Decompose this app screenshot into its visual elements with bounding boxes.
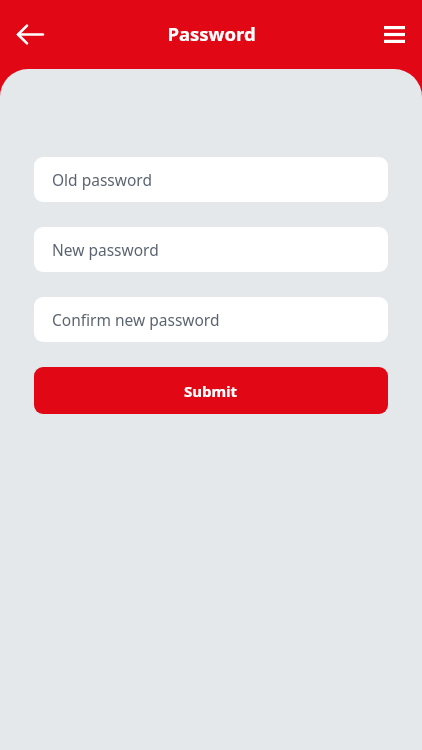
staticText: Password <box>167 21 256 46</box>
button[interactable]: Confirm new password <box>34 297 388 342</box>
button[interactable]: New password <box>34 227 388 272</box>
staticText: Old password <box>52 169 152 190</box>
button[interactable]: Submit <box>34 367 388 414</box>
button[interactable]: Back <box>6 10 54 58</box>
button[interactable]: Old password <box>34 157 388 202</box>
staticText: Submit <box>184 381 238 401</box>
staticText: Confirm new password <box>52 309 220 330</box>
button[interactable]: Menu <box>372 12 416 56</box>
staticText: New password <box>52 239 159 260</box>
